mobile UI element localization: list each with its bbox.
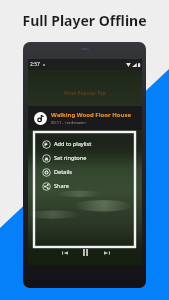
button[interactable]: Walking Wood Floor House (28, 106, 142, 130)
staticText: 2:57 (30, 61, 40, 68)
staticText: 00:11 - <unknown> (51, 120, 87, 125)
button[interactable]: Previous (59, 247, 70, 258)
button[interactable]: Share (34, 179, 135, 193)
staticText: Walking Wood Floor House (51, 111, 132, 119)
button[interactable]: Add to playlist (34, 137, 135, 151)
button[interactable]: Pause (80, 247, 91, 258)
staticText: Add to playlist (54, 140, 92, 148)
staticText: Full Player Offline (0, 11, 169, 30)
button[interactable]: Set ringtone (34, 151, 135, 165)
button[interactable]: Next (101, 247, 112, 258)
staticText: Share (54, 182, 70, 190)
staticText: Set ringtone (54, 154, 87, 162)
staticText: Most Popular Top (28, 90, 142, 97)
staticText: Details (54, 168, 72, 176)
button[interactable]: Details (34, 165, 135, 179)
